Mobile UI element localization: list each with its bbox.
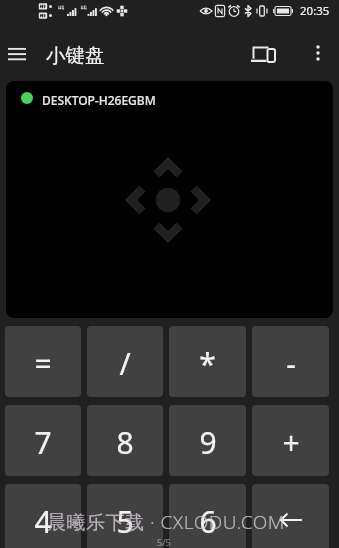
- button[interactable]: -: [252, 326, 329, 397]
- button[interactable]: 4: [5, 484, 81, 548]
- staticText: 5: [116, 501, 134, 542]
- button[interactable]: More options: [296, 32, 339, 76]
- button[interactable]: Cast to device: [241, 32, 285, 76]
- staticText: /: [119, 343, 131, 384]
- staticText: 小键盘: [46, 43, 105, 68]
- button[interactable]: /: [87, 326, 163, 397]
- other: Backspace: [277, 506, 305, 534]
- button[interactable]: =: [5, 326, 81, 397]
- button[interactable]: 7: [5, 405, 81, 476]
- button[interactable]: Navigation menu: [0, 32, 34, 76]
- button[interactable]: 5: [87, 484, 163, 548]
- button[interactable]: *: [169, 326, 246, 397]
- staticText: -: [286, 343, 296, 384]
- staticText: 8: [116, 422, 134, 463]
- staticText: 5/5: [157, 536, 171, 548]
- button[interactable]: Backspace: [252, 484, 329, 548]
- button[interactable]: 8: [87, 405, 163, 476]
- staticText: *: [199, 343, 216, 384]
- staticText: 7: [34, 422, 52, 463]
- staticText: =: [34, 343, 52, 384]
- staticText: 6: [199, 501, 217, 542]
- staticText: 20:35: [300, 3, 330, 19]
- staticText: 9: [199, 422, 217, 463]
- staticText: +: [282, 422, 300, 463]
- button[interactable]: 9: [169, 405, 246, 476]
- button[interactable]: 6: [169, 484, 246, 548]
- staticText: 晨曦乐下载 · CXLODU.COM: [47, 509, 285, 535]
- staticText: DESKTOP-H26EGBM: [42, 92, 156, 108]
- button[interactable]: +: [252, 405, 329, 476]
- staticText: 4: [34, 501, 52, 542]
- button[interactable]: Touchpad: [6, 81, 333, 318]
